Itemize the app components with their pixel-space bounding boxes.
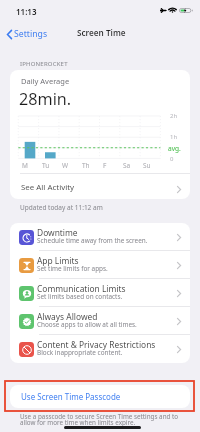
staticText: 1h	[170, 133, 178, 141]
button[interactable]: App Limits	[10, 251, 190, 279]
staticText: Daily Average	[21, 76, 70, 86]
staticText: Choose apps to allow at all times.	[37, 320, 137, 329]
staticText: 28min.	[19, 88, 72, 110]
button[interactable]: Downtime	[10, 223, 190, 251]
staticText: Downtime	[37, 227, 78, 238]
staticText: Th	[82, 161, 90, 170]
staticText: Communication Limits	[37, 283, 126, 294]
staticText: Content & Privacy Restrictions	[37, 339, 156, 350]
staticText: 0	[170, 155, 174, 163]
button[interactable]: See All Activity	[10, 175, 190, 199]
staticText: 2h	[170, 112, 178, 120]
staticText: Updated today at 11:12 am	[20, 203, 103, 212]
staticText: Schedule time away from the screen.	[37, 236, 148, 245]
button[interactable]: Communication Limits	[10, 279, 190, 307]
staticText: Su	[143, 161, 151, 170]
staticText: Screen Time	[77, 27, 126, 38]
button[interactable]: Content & Privacy Restrictions	[10, 335, 190, 363]
staticText: Sa	[123, 161, 131, 170]
staticText: Use a passcode to secure Screen Time set…	[20, 412, 179, 427]
staticText: Set time limits for apps.	[37, 264, 108, 273]
staticText: Tu	[42, 161, 50, 170]
button[interactable]: Always Allowed	[10, 307, 190, 335]
staticText: See All Activity	[21, 182, 177, 193]
button[interactable]: Use Screen Time Passcode	[10, 385, 190, 408]
button[interactable]: Settings	[7, 26, 48, 42]
staticText: F	[103, 161, 107, 170]
staticText: Always Allowed	[37, 311, 98, 322]
staticText: Set limits based on contacts.	[37, 292, 123, 301]
staticText: 11:13	[16, 6, 37, 17]
staticText: App Limits	[37, 255, 79, 266]
staticText: IPHONEROCKET	[20, 60, 68, 68]
staticText: avg.	[168, 144, 181, 153]
staticText: Use Screen Time Passcode	[21, 391, 121, 402]
staticText: W	[62, 161, 69, 170]
staticText: M	[22, 161, 28, 170]
staticText: Block inappropriate content.	[37, 348, 123, 357]
staticText: Settings	[14, 28, 48, 40]
